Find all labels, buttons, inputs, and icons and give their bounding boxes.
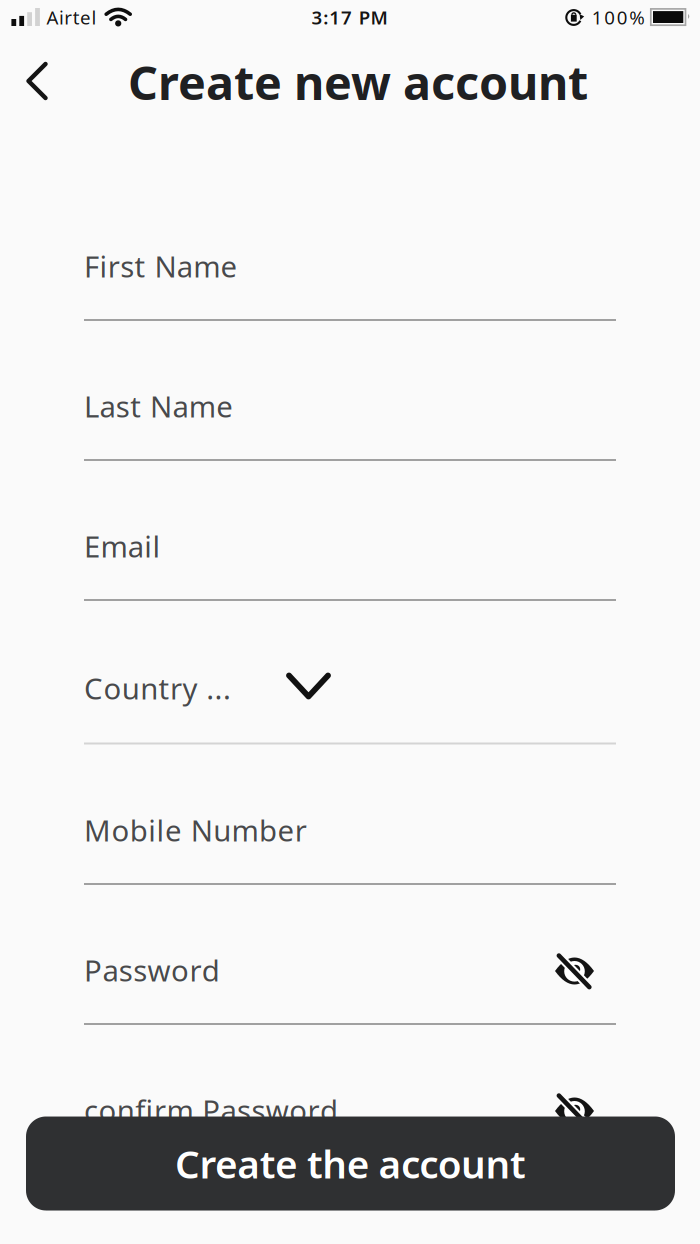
button[interactable]: Mobile Number xyxy=(84,788,616,886)
button[interactable]: Show confirm password xyxy=(542,1079,606,1143)
button[interactable]: Create the account xyxy=(26,1116,675,1210)
button[interactable]: Last Name xyxy=(84,364,616,462)
button[interactable]: Country ... xyxy=(84,646,616,745)
staticText: Airtel xyxy=(46,5,96,30)
button[interactable]: Back xyxy=(15,53,59,109)
staticText: 100% xyxy=(592,5,645,30)
button[interactable]: Show password xyxy=(542,939,606,1003)
button[interactable]: confirm Password xyxy=(84,1068,616,1166)
button[interactable]: Password xyxy=(84,928,616,1026)
staticText: First Name xyxy=(84,246,238,285)
staticText: Country ... xyxy=(84,668,231,707)
button[interactable]: First Name xyxy=(84,224,616,322)
staticText: Mobile Number xyxy=(84,810,307,849)
staticText: Password xyxy=(84,950,220,989)
staticText: confirm Password xyxy=(84,1090,338,1129)
staticText: Create the account xyxy=(175,1138,526,1189)
staticText: Email xyxy=(84,526,161,565)
staticText: 3:17 PM xyxy=(311,5,388,30)
staticText: Last Name xyxy=(84,386,233,425)
button[interactable]: Email xyxy=(84,504,616,602)
staticText: Create new account xyxy=(128,51,588,113)
